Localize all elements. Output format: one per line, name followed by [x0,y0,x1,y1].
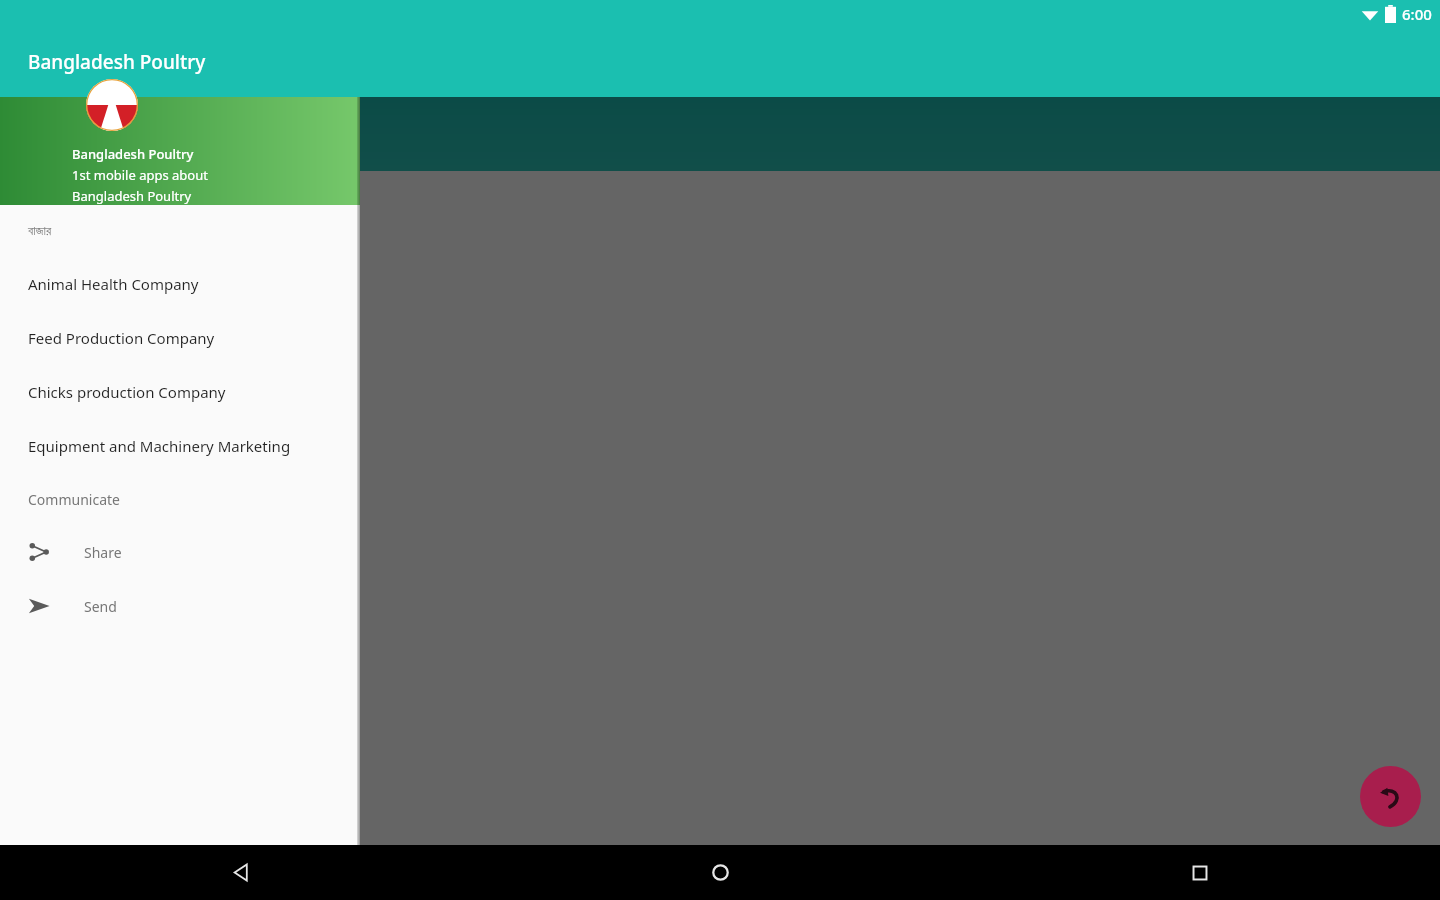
button[interactable]: Back [0,845,480,900]
staticText: Feed Production Company [28,328,215,348]
staticText: Communicate [28,490,120,509]
staticText: Equipment and Machinery Marketing [28,436,291,456]
staticText: 6:00 [1402,4,1432,24]
button[interactable]: Animal Health Company [0,257,360,311]
button[interactable]: Recents [960,845,1440,900]
staticText: Send [84,597,117,616]
staticText: Animal Health Company [28,274,199,294]
button[interactable]: Send [0,579,360,633]
staticText: Bangladesh Poultry [28,49,206,75]
staticText: Bangladesh Poultry [72,187,192,205]
staticText: 1st mobile apps about [72,166,208,184]
staticText: বাজার [28,225,52,238]
button[interactable]: Feed Production Company [0,311,360,365]
staticText: Share [84,543,122,562]
staticText: Bangladesh Poultry [72,145,194,163]
button[interactable]: Home [480,845,960,900]
button[interactable]: Undo [1360,766,1421,827]
button[interactable]: Equipment and Machinery Marketing [0,419,360,473]
button[interactable]: Share [0,525,360,579]
staticText: Chicks production Company [28,382,226,402]
button[interactable]: Chicks production Company [0,365,360,419]
